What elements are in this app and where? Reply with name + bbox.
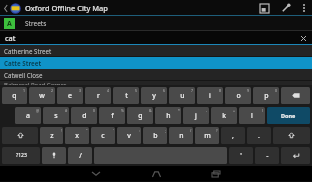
button[interactable]: p	[253, 87, 279, 104]
button[interactable]: m	[195, 127, 219, 144]
staticText: 0	[275, 88, 278, 93]
staticText: 6	[163, 88, 166, 93]
staticText: a	[26, 111, 30, 121]
button[interactable]: u	[169, 87, 195, 104]
staticText: 2	[51, 88, 54, 93]
staticText: o	[236, 91, 241, 101]
button[interactable]: Shift	[2, 127, 38, 144]
button[interactable]: c	[91, 127, 115, 144]
staticText: k	[222, 111, 226, 121]
button[interactable]: h	[155, 107, 181, 124]
button[interactable]: o	[225, 87, 251, 104]
button[interactable]: Catwell Close	[0, 69, 312, 81]
staticText: g	[138, 111, 143, 121]
staticText: $	[93, 108, 96, 113]
staticText: 5	[135, 88, 138, 93]
staticText: @	[36, 108, 40, 113]
staticText: Catte Street	[4, 59, 42, 67]
button[interactable]: a	[15, 107, 41, 124]
staticText: q	[12, 91, 17, 101]
button[interactable]: .	[247, 127, 271, 144]
staticText: 1	[23, 88, 26, 93]
staticText: r	[97, 91, 100, 101]
button[interactable]: Done	[267, 107, 310, 124]
staticText: .	[258, 131, 260, 141]
staticText: 3	[79, 88, 82, 93]
button[interactable]: q	[2, 87, 27, 104]
staticText: d	[82, 111, 87, 121]
button[interactable]: Save map	[255, 0, 273, 16]
button[interactable]: Home	[126, 166, 186, 181]
staticText: y	[152, 91, 156, 101]
staticText: 4	[107, 88, 110, 93]
button[interactable]: i	[197, 87, 223, 104]
staticText: v	[127, 131, 131, 141]
staticText: i	[209, 91, 211, 101]
button[interactable]: Backspace	[281, 87, 310, 104]
button[interactable]: g	[127, 107, 153, 124]
button[interactable]: l	[239, 107, 265, 124]
staticText: p	[264, 91, 269, 101]
staticText: x	[75, 131, 79, 141]
staticText: Balmoral Road Corner	[4, 81, 67, 85]
button[interactable]: k	[211, 107, 237, 124]
button[interactable]: v	[117, 127, 141, 144]
button[interactable]: /	[68, 147, 92, 164]
button[interactable]: A	[0, 16, 312, 31]
staticText: /	[79, 151, 82, 161]
staticText: b	[153, 131, 158, 141]
button[interactable]: Catte Street	[0, 57, 312, 69]
button[interactable]: t	[113, 87, 139, 104]
staticText: '	[240, 151, 242, 161]
staticText: f	[111, 111, 114, 121]
button[interactable]: x	[65, 127, 89, 144]
button[interactable]: Tools	[277, 0, 295, 16]
staticText: :	[139, 128, 140, 133]
button[interactable]: More options	[298, 0, 310, 16]
button[interactable]: Enter	[281, 147, 310, 164]
staticText: Done	[281, 112, 296, 119]
staticText: n	[179, 131, 184, 141]
staticText: '	[113, 128, 114, 133]
button[interactable]: d	[71, 107, 97, 124]
staticText: u	[180, 91, 185, 101]
button[interactable]: Navigate up	[2, 1, 9, 15]
staticText: cat	[5, 33, 16, 43]
button[interactable]: n	[169, 127, 193, 144]
button[interactable]: ?123	[2, 147, 40, 164]
staticText: m	[204, 131, 211, 141]
button[interactable]: -	[255, 147, 279, 164]
button[interactable]: Recent apps	[186, 166, 246, 181]
staticText: Oxford Offline City Map	[25, 3, 108, 13]
button[interactable]: Balmoral Road Corner	[0, 81, 312, 85]
button[interactable]: '	[229, 147, 253, 164]
staticText: e	[68, 91, 72, 101]
staticText: #	[65, 108, 68, 113]
button[interactable]: w	[29, 87, 55, 104]
staticText: ;	[165, 128, 166, 133]
button[interactable]: Clear query	[298, 33, 308, 43]
button[interactable]: j	[183, 107, 209, 124]
staticText: (	[262, 108, 264, 113]
button[interactable]: Voice input	[42, 147, 66, 164]
button[interactable]: z	[40, 127, 63, 144]
button[interactable]: Hide keyboard	[66, 166, 126, 181]
button[interactable]: Shift	[273, 127, 310, 144]
button[interactable]: f	[99, 107, 125, 124]
button[interactable]: s	[43, 107, 69, 124]
button[interactable]: Catherine Street	[0, 45, 312, 57]
staticText: z	[50, 131, 54, 141]
button[interactable]: b	[143, 127, 167, 144]
staticText: ?123	[16, 152, 27, 159]
staticText: l	[251, 111, 253, 121]
button[interactable]: r	[85, 87, 111, 104]
staticText: 7	[191, 88, 194, 93]
button[interactable]: cat	[0, 31, 312, 45]
staticText: Streets	[25, 19, 47, 28]
button[interactable]: y	[141, 87, 167, 104]
staticText: -	[266, 151, 269, 161]
staticText: Catherine Street	[4, 47, 52, 55]
button[interactable]: ,	[221, 127, 245, 144]
button[interactable]: e	[57, 87, 83, 104]
